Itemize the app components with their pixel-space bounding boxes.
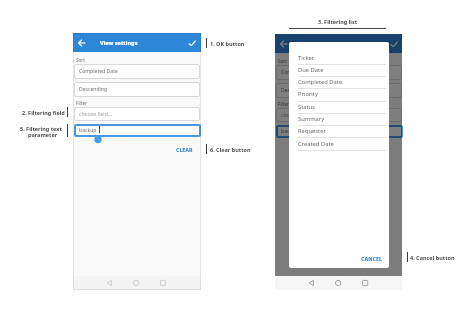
staticText: View settings xyxy=(100,39,138,47)
staticText: Filter xyxy=(76,100,87,106)
button[interactable]: Completed Date xyxy=(289,76,389,88)
staticText: choose field... xyxy=(281,112,314,119)
button[interactable]: CANCEL xyxy=(357,252,383,264)
button[interactable]: Due Date xyxy=(289,64,389,76)
button[interactable] xyxy=(77,38,87,48)
staticText: parameter xyxy=(28,131,58,138)
button[interactable]: choose field... xyxy=(276,108,402,122)
button[interactable]: Completed Date xyxy=(74,64,200,79)
staticText: Completed Date xyxy=(298,78,343,86)
button[interactable]: Created Date xyxy=(289,138,389,150)
staticText: Summary xyxy=(298,115,325,123)
staticText: Completed Date xyxy=(281,69,320,76)
button[interactable]: Descending xyxy=(74,82,200,97)
button[interactable] xyxy=(389,39,399,49)
staticText: 5. Filtering text xyxy=(20,125,62,132)
staticText: 6. Clear button xyxy=(210,146,251,153)
button[interactable]: Status xyxy=(289,101,389,113)
staticText: 4. Cancel button xyxy=(410,254,455,261)
staticText: choose field... xyxy=(79,111,112,118)
staticText: Descending xyxy=(79,86,108,93)
button[interactable] xyxy=(279,39,289,49)
staticText: 2. Filtering field xyxy=(22,109,65,116)
button[interactable]: Summary xyxy=(289,113,389,125)
staticText: CANCEL xyxy=(361,255,383,262)
button[interactable]: Completed Date xyxy=(276,65,402,80)
staticText: Status xyxy=(298,103,315,111)
staticText: backup xyxy=(79,127,97,134)
staticText: Priority xyxy=(298,90,318,98)
button[interactable]: backup xyxy=(74,124,201,137)
button[interactable]: Priority xyxy=(289,88,389,100)
staticText: Sort xyxy=(76,57,85,63)
staticText: Ticket xyxy=(298,54,314,62)
staticText: Due Date xyxy=(298,66,324,74)
button[interactable]: backup xyxy=(276,125,403,138)
button[interactable]: CLEAR xyxy=(171,143,193,155)
staticText: Descending xyxy=(281,87,310,94)
staticText: View settings xyxy=(302,40,340,48)
staticText: Created Date xyxy=(298,140,334,148)
staticText: backup xyxy=(281,128,299,135)
staticText: Sort xyxy=(278,58,287,64)
staticText: 1. OK button xyxy=(210,40,245,47)
button[interactable]: choose field... xyxy=(74,107,200,121)
staticText: CLEAR xyxy=(176,146,193,153)
button[interactable]: Ticket xyxy=(289,52,389,64)
button[interactable]: Requester xyxy=(289,125,389,137)
staticText: Filter xyxy=(278,101,289,107)
staticText: 3. Filtering list xyxy=(318,18,358,25)
button[interactable]: Descending xyxy=(276,83,402,98)
staticText: Completed Date xyxy=(79,68,118,75)
button[interactable] xyxy=(187,38,197,48)
staticText: Requester xyxy=(298,127,326,135)
